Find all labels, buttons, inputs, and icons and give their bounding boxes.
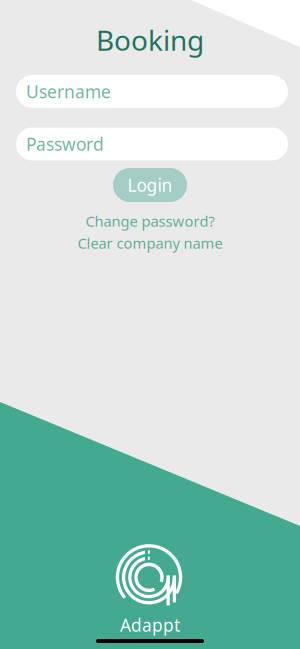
- staticText: Change password?: [85, 211, 214, 231]
- staticText: Username: [26, 80, 111, 103]
- staticText: Password: [26, 132, 104, 155]
- staticText: Login: [127, 173, 172, 196]
- staticText: Adappt: [120, 613, 180, 636]
- button[interactable]: Clear company name: [77, 233, 222, 253]
- button[interactable]: Change password?: [85, 211, 214, 231]
- button[interactable]: Login: [113, 168, 187, 202]
- staticText: Booking: [96, 21, 204, 59]
- staticText: Clear company name: [77, 233, 222, 253]
